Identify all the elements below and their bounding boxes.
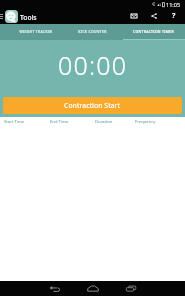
staticText: Start Time <box>4 119 25 125</box>
button[interactable]: WEIGHT TRACKER <box>0 24 61 40</box>
button[interactable]: Home <box>85 281 100 296</box>
button[interactable]: Back <box>47 281 62 296</box>
staticText: KICK COUNTER <box>78 29 107 34</box>
staticText: ? <box>172 11 176 21</box>
staticText: 00:00 <box>58 48 128 82</box>
staticText: 11:05 <box>166 1 181 8</box>
staticText: Tools <box>20 13 37 22</box>
staticText: CONTRACTION TIMER <box>133 29 174 34</box>
button[interactable]: Contraction Start <box>3 97 182 114</box>
staticText: Duration <box>95 119 113 125</box>
staticText: Contraction Start <box>64 101 121 110</box>
button[interactable]: Open navigation drawer <box>0 8 5 24</box>
staticText: End Time <box>50 119 69 125</box>
staticText: WEIGHT TRACKER <box>19 29 53 34</box>
button[interactable]: KICK COUNTER <box>61 24 123 40</box>
button[interactable]: Help <box>164 8 184 24</box>
button[interactable]: Share <box>144 8 164 24</box>
button[interactable]: Email <box>124 8 144 24</box>
button[interactable]: Recents <box>123 281 138 296</box>
button[interactable]: CONTRACTION TIMER <box>123 24 185 40</box>
staticText: Frequency <box>135 119 156 125</box>
